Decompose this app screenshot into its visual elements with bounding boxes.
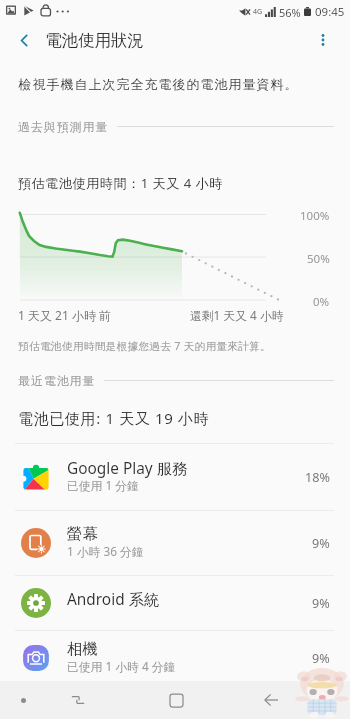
button[interactable]: Home bbox=[162, 686, 190, 714]
staticText: 最近電池用量 bbox=[18, 373, 96, 388]
staticText: 18% bbox=[305, 469, 330, 486]
staticText: 預估電池使用時間：1 天又 4 小時 bbox=[18, 174, 223, 192]
staticText: 還剩1 天又 4 小時 bbox=[190, 307, 284, 323]
staticText: 1 小時 36 分鐘 bbox=[67, 543, 144, 559]
staticText: Google Play 服務 bbox=[67, 458, 188, 479]
staticText: 0% bbox=[313, 294, 330, 310]
staticText: 50% bbox=[307, 251, 330, 267]
staticText: 過去與預測用量 bbox=[18, 119, 109, 134]
button[interactable]: Android 系統 bbox=[0, 576, 350, 630]
button[interactable]: Show keyboard bbox=[9, 686, 37, 714]
staticText: 相機 bbox=[67, 639, 98, 658]
staticText: 1 天又 21 小時 前 bbox=[18, 307, 112, 323]
staticText: 100% bbox=[300, 208, 330, 224]
staticText: 已使用 1 分鐘 bbox=[67, 477, 139, 493]
staticText: 9% bbox=[312, 535, 330, 552]
button[interactable]: 相機 bbox=[0, 631, 350, 685]
staticText: 已使用 1 小時 4 分鐘 bbox=[67, 658, 176, 674]
button[interactable]: Google Play 服務 bbox=[0, 444, 350, 510]
staticText: 9% bbox=[312, 595, 330, 612]
button[interactable]: Recents bbox=[64, 686, 92, 714]
button[interactable]: 螢幕 bbox=[0, 511, 350, 575]
staticText: 9% bbox=[312, 650, 330, 667]
staticText: 預估電池使用時間是根據您過去 7 天的用量來計算。 bbox=[18, 338, 272, 353]
staticText: 檢視手機自上次完全充電後的電池用量資料。 bbox=[18, 76, 298, 92]
staticText: 4G bbox=[253, 7, 263, 17]
staticText: 56% bbox=[279, 5, 301, 20]
staticText: 09:45 bbox=[315, 4, 345, 20]
staticText: 電池已使用: 1 天又 19 小時 bbox=[18, 408, 210, 428]
button[interactable]: Back bbox=[257, 686, 285, 714]
button[interactable]: Back bbox=[8, 24, 40, 56]
staticText: 螢幕 bbox=[67, 524, 98, 543]
staticText: 電池使用狀況 bbox=[45, 30, 144, 51]
staticText: Android 系統 bbox=[67, 589, 160, 610]
button[interactable]: More options bbox=[307, 24, 339, 56]
